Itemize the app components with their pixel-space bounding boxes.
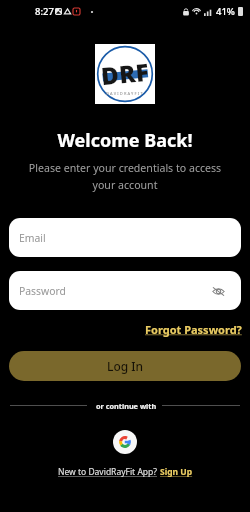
button[interactable]: Email bbox=[9, 218, 241, 257]
staticText: Sign Up bbox=[160, 466, 193, 478]
staticText: Password bbox=[19, 284, 66, 298]
staticText: Forgot Password? bbox=[145, 322, 242, 337]
button[interactable]: New to DavidRayFit App? bbox=[0, 466, 250, 478]
staticText: Log In bbox=[107, 358, 144, 374]
staticText: DRF bbox=[99, 55, 150, 92]
button[interactable]: Toggle password visibility bbox=[210, 283, 226, 299]
staticText: New to DavidRayFit App? bbox=[58, 466, 160, 478]
staticText: Please enter your credentials to access … bbox=[0, 161, 250, 192]
button[interactable]: Password bbox=[9, 271, 241, 310]
button[interactable]: Sign in with Google bbox=[113, 430, 137, 454]
staticText: DAVIDRAYFIT bbox=[106, 91, 144, 96]
staticText: 41% bbox=[216, 5, 235, 18]
staticText: Welcome Back! bbox=[0, 128, 250, 153]
staticText: 8:27 bbox=[35, 5, 54, 18]
staticText: or continue with bbox=[96, 401, 157, 411]
button[interactable]: Log In bbox=[9, 351, 241, 381]
button[interactable]: Forgot Password? bbox=[145, 322, 242, 337]
staticText: Email bbox=[19, 231, 46, 245]
